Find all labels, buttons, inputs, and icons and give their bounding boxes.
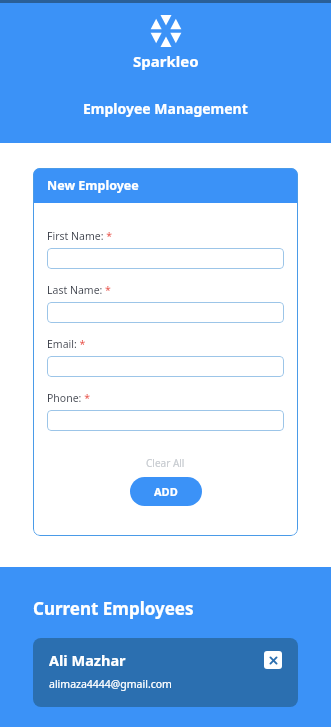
button[interactable]: Clear All xyxy=(140,455,191,471)
button[interactable]: Ali Mazhar xyxy=(33,638,298,707)
staticText: Phone: * xyxy=(47,391,90,405)
staticText: New Employee xyxy=(47,177,139,194)
button[interactable]: ADD xyxy=(130,477,202,506)
staticText: Last Name: * xyxy=(47,283,111,297)
staticText: ADD xyxy=(154,484,178,499)
button[interactable]: First Name: xyxy=(47,248,284,269)
staticText: Ali Mazhar xyxy=(49,650,126,670)
button[interactable]: Delete employee xyxy=(264,651,282,669)
staticText: Email: * xyxy=(47,337,86,351)
staticText: Employee Management xyxy=(83,99,248,118)
staticText: First Name: * xyxy=(47,229,112,243)
staticText: Current Employees xyxy=(33,597,194,620)
staticText: Sparkleo xyxy=(133,51,199,71)
button[interactable]: Last Name: xyxy=(47,302,284,323)
button[interactable]: Email: xyxy=(47,356,284,377)
button[interactable]: Phone: xyxy=(47,410,284,431)
staticText: alimaza4444@gmail.com xyxy=(49,677,172,691)
staticText: Clear All xyxy=(146,456,185,470)
